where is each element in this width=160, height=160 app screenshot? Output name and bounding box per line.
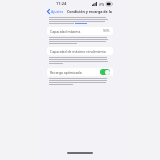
staticText: Ajustes (51, 9, 64, 14)
button[interactable]: Recarga optimizada (47, 68, 113, 76)
staticText: VPN (99, 3, 105, 6)
button[interactable]: Back (46, 9, 65, 14)
button[interactable]: Capacidad de máximo rendimiento (47, 47, 113, 55)
staticText: 90% (103, 29, 110, 33)
staticText: Condición y recarga de la batería (67, 9, 114, 14)
button[interactable]: Capacidad máxima (47, 27, 113, 35)
staticText: Recarga optimizada (50, 70, 100, 75)
staticText: 11:24 (56, 1, 67, 6)
staticText: Capacidad máxima (50, 29, 103, 34)
staticText: Capacidad de máximo rendimiento (50, 49, 110, 54)
other: Back (47, 9, 50, 14)
button[interactable]: Recarga optimizada toggle (100, 69, 110, 75)
